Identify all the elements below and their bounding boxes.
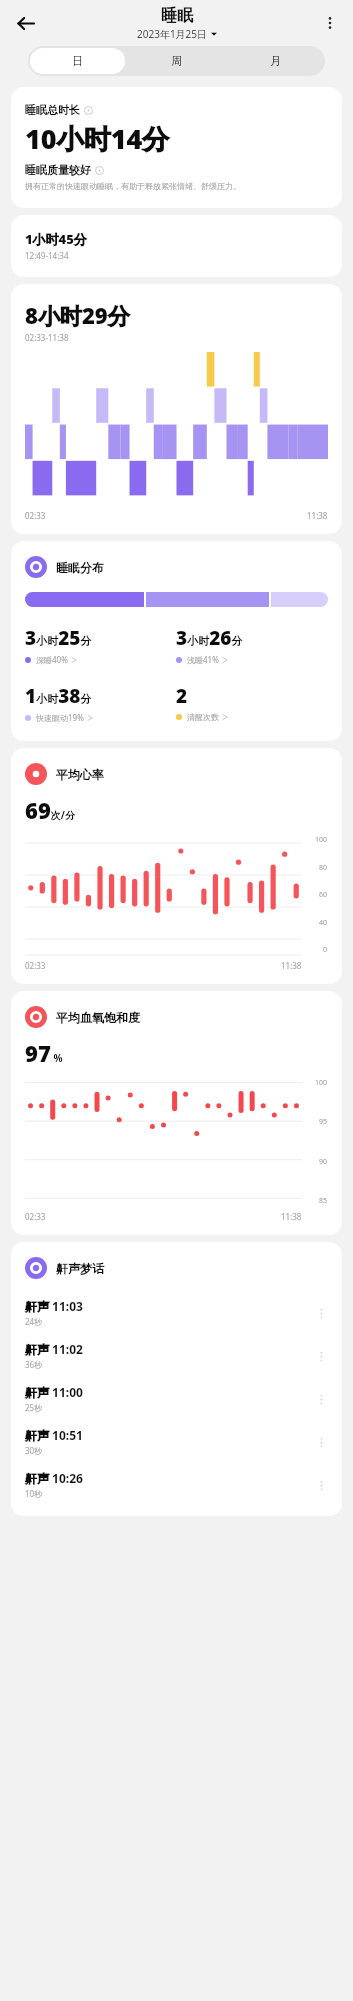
staticText: 日 bbox=[72, 54, 83, 68]
staticText: 月 bbox=[270, 54, 281, 68]
staticText: 3小时26分 bbox=[176, 625, 243, 651]
button[interactable]: 睡眠 bbox=[137, 6, 217, 41]
staticText: 平均血氧饱和度 bbox=[56, 1010, 140, 1025]
staticText: 鼾声梦话 bbox=[56, 1261, 104, 1276]
staticText: 80 bbox=[319, 863, 328, 873]
staticText: 12:49-14:34 bbox=[25, 250, 69, 261]
staticText: 鼾声 11:00 bbox=[25, 1384, 83, 1400]
staticText: 10秒 bbox=[25, 1488, 43, 1499]
staticText: 1小时38分 bbox=[25, 683, 92, 709]
staticText: 鼾声 11:03 bbox=[25, 1298, 83, 1314]
staticText: 02:33 bbox=[25, 510, 46, 521]
staticText: 0 bbox=[323, 945, 328, 955]
button[interactable]: More bbox=[310, 1345, 332, 1367]
staticText: 97 % bbox=[25, 1038, 63, 1068]
staticText: 100 bbox=[315, 1078, 328, 1088]
button[interactable]: More bbox=[310, 1474, 332, 1496]
staticText: 周 bbox=[171, 54, 182, 68]
staticText: 浅睡41% bbox=[187, 654, 219, 665]
button[interactable]: 鼾声 11:02 bbox=[25, 1334, 332, 1377]
staticText: 拥有正常的快速眼动睡眠，有助于释放紧张情绪、舒缓压力。 bbox=[25, 181, 241, 191]
button[interactable]: More bbox=[310, 1388, 332, 1410]
staticText: 85 bbox=[319, 1196, 328, 1206]
button[interactable]: 鼾声 10:26 bbox=[25, 1463, 332, 1506]
button[interactable]: More bbox=[310, 1431, 332, 1453]
button[interactable]: 月 bbox=[228, 48, 323, 74]
staticText: 95 bbox=[319, 1117, 328, 1127]
button[interactable]: 3小时25分 bbox=[25, 623, 176, 667]
staticText: 30秒 bbox=[25, 1445, 43, 1456]
staticText: 睡眠 bbox=[161, 6, 193, 26]
button[interactable]: 日 bbox=[30, 48, 125, 74]
staticText: 睡眠分布 bbox=[56, 560, 104, 575]
button[interactable]: 2 bbox=[176, 681, 328, 724]
staticText: 平均心率 bbox=[56, 767, 104, 782]
staticText: 睡眠质量较好 bbox=[25, 163, 91, 177]
staticText: 鼾声 10:51 bbox=[25, 1427, 83, 1443]
staticText: 深睡40% bbox=[36, 654, 68, 665]
button[interactable]: 周 bbox=[129, 48, 224, 74]
staticText: 02:33 bbox=[25, 1211, 46, 1222]
staticText: 60 bbox=[319, 890, 328, 900]
button[interactable]: 平均心率 bbox=[0, 748, 353, 984]
button[interactable]: 1小时45分 bbox=[0, 215, 353, 277]
button[interactable]: 平均血氧饱和度 bbox=[0, 991, 353, 1235]
staticText: 10小时14分 bbox=[25, 120, 170, 157]
staticText: 11:38 bbox=[281, 960, 302, 971]
button[interactable]: More bbox=[310, 1302, 332, 1324]
staticText: 11:38 bbox=[281, 1211, 302, 1222]
staticText: 清醒次数 bbox=[187, 712, 219, 722]
button[interactable]: More options bbox=[315, 8, 345, 38]
button[interactable]: 鼾声 10:51 bbox=[25, 1420, 332, 1463]
staticText: 100 bbox=[315, 835, 328, 845]
staticText: 2 bbox=[176, 683, 188, 709]
staticText: 02:33 bbox=[25, 960, 46, 971]
staticText: 3小时25分 bbox=[25, 625, 92, 651]
staticText: 2023年1月25日 bbox=[137, 27, 208, 41]
button[interactable]: 1小时38分 bbox=[25, 681, 176, 725]
staticText: 鼾声 10:26 bbox=[25, 1470, 83, 1486]
staticText: 02:33-11:38 bbox=[25, 332, 69, 343]
staticText: 25秒 bbox=[25, 1402, 43, 1413]
staticText: 90 bbox=[319, 1157, 328, 1167]
staticText: 1小时45分 bbox=[25, 230, 87, 248]
button[interactable]: 8小时29分 bbox=[0, 284, 353, 534]
staticText: 睡眠总时长 bbox=[25, 103, 80, 117]
staticText: 36秒 bbox=[25, 1359, 43, 1370]
button[interactable]: Back bbox=[8, 6, 42, 40]
staticText: 40 bbox=[319, 918, 328, 928]
staticText: 快速眼动19% bbox=[36, 712, 84, 723]
staticText: 69次/分 bbox=[25, 795, 75, 825]
button[interactable]: 睡眠总时长 bbox=[0, 87, 353, 208]
staticText: 鼾声 11:02 bbox=[25, 1341, 83, 1357]
staticText: 11:38 bbox=[307, 510, 328, 521]
button[interactable]: 3小时26分 bbox=[176, 623, 328, 667]
button[interactable]: 鼾声 11:03 bbox=[25, 1291, 332, 1334]
button[interactable]: 鼾声 11:00 bbox=[25, 1377, 332, 1420]
staticText: 8小时29分 bbox=[25, 300, 130, 330]
staticText: 24秒 bbox=[25, 1316, 43, 1327]
